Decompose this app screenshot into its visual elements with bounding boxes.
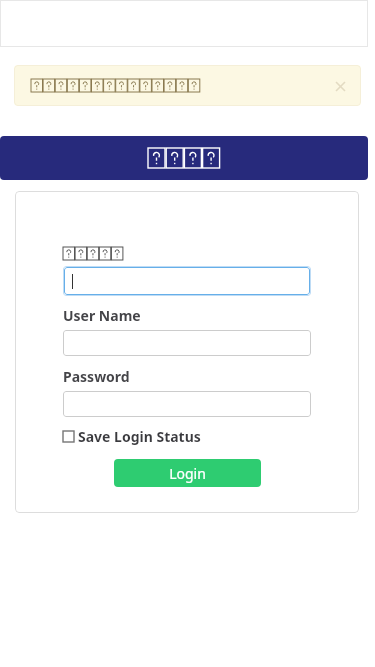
staticText: Password <box>63 367 130 386</box>
button[interactable] <box>64 267 310 295</box>
button[interactable] <box>63 330 311 356</box>
button[interactable]: Close alert <box>14 65 361 106</box>
button[interactable] <box>0 136 368 180</box>
button[interactable] <box>63 391 311 417</box>
button[interactable]: Login <box>114 459 261 487</box>
button[interactable]: Save Login Status <box>63 427 201 446</box>
button[interactable]: Close alert <box>331 77 349 95</box>
staticText: Save Login Status <box>78 427 201 446</box>
staticText: Login <box>169 464 206 483</box>
staticText: User Name <box>63 306 141 325</box>
